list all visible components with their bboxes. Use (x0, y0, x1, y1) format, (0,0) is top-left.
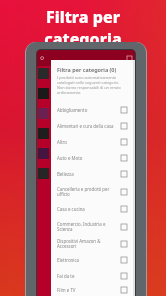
button[interactable]: Cancelleria e prodotti per ufficio (51, 182, 133, 201)
staticText: I prodotti sono automaticamente cataloga… (57, 75, 125, 95)
staticText: Abbigliamento (57, 107, 118, 113)
staticText: Bellezza (57, 171, 118, 177)
staticText: Filtra per categoria (0) (57, 66, 117, 73)
staticText: Fai da te (57, 273, 118, 279)
staticText: Filtra per (46, 6, 120, 28)
staticText: Dispositivi Amazon & Accessori (57, 238, 118, 250)
staticText: Alimentari e cura della casa (57, 123, 118, 129)
button[interactable]: Alimentari e cura della casa (51, 118, 133, 134)
button[interactable]: Cart (127, 56, 132, 61)
staticText: Cancelleria e prodotti per ufficio (57, 186, 118, 198)
button[interactable]: Casa e cucina (51, 201, 133, 217)
button[interactable]: Elettronica (51, 252, 133, 268)
button[interactable]: Altro (51, 134, 133, 150)
button[interactable]: Commercio, Industria e Scienza (51, 217, 133, 236)
button[interactable]: Fai da te (51, 268, 133, 284)
staticText: Auto e Moto (57, 155, 118, 161)
button[interactable]: Bellezza (51, 166, 133, 182)
staticText: Film e TV (57, 287, 118, 293)
staticText: Elettronica (57, 257, 118, 263)
staticText: Commercio, Industria e Scienza (57, 221, 118, 233)
button[interactable]: Auto e Moto (51, 150, 133, 166)
staticText: Casa e cucina (57, 206, 118, 212)
button[interactable]: Dispositivi Amazon & Accessori (51, 236, 133, 252)
button[interactable]: Search (40, 56, 45, 61)
button[interactable]: Film e TV (51, 284, 133, 296)
staticText: categoria (44, 28, 122, 50)
staticText: Altro (57, 139, 118, 145)
button[interactable]: Abbigliamento (51, 102, 133, 118)
